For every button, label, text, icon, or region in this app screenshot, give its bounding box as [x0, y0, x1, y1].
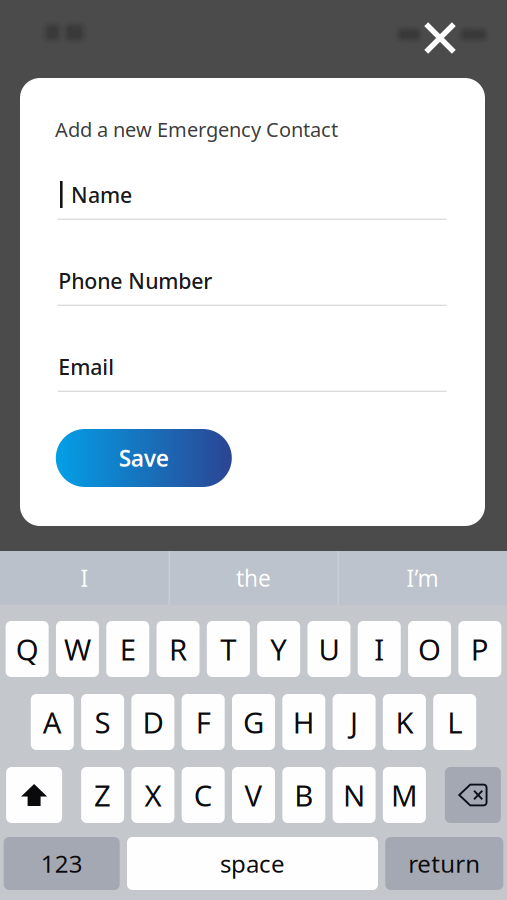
- staticText: N: [343, 775, 365, 814]
- staticText: E: [120, 629, 136, 668]
- staticText: A: [43, 702, 62, 741]
- button[interactable]: V: [232, 767, 275, 823]
- staticText: W: [64, 629, 91, 668]
- staticText: K: [395, 702, 413, 741]
- staticText: F: [196, 702, 211, 741]
- button[interactable]: S: [81, 694, 124, 750]
- staticText: O: [418, 629, 441, 668]
- button[interactable]: P: [458, 621, 501, 677]
- button[interactable]: X: [131, 767, 174, 823]
- button[interactable]: K: [383, 694, 426, 750]
- staticText: T: [220, 629, 236, 668]
- staticText: I’m: [406, 563, 438, 593]
- button[interactable]: Email: [58, 348, 447, 392]
- staticText: U: [318, 629, 339, 668]
- button[interactable]: T: [207, 621, 250, 677]
- staticText: R: [169, 629, 187, 668]
- button[interactable]: Y: [257, 621, 300, 677]
- button[interactable]: W: [56, 621, 99, 677]
- button[interactable]: B: [282, 767, 325, 823]
- button[interactable]: M: [383, 767, 426, 823]
- button[interactable]: E: [106, 621, 149, 677]
- staticText: V: [244, 775, 262, 814]
- button[interactable]: Close: [411, 9, 469, 67]
- button[interactable]: the: [169, 551, 338, 605]
- staticText: I: [80, 563, 88, 593]
- button[interactable]: D: [131, 694, 174, 750]
- staticText: H: [293, 702, 315, 741]
- button[interactable]: Save: [56, 429, 232, 487]
- staticText: S: [95, 702, 111, 741]
- button[interactable]: space: [127, 837, 378, 890]
- staticText: space: [220, 848, 285, 879]
- staticText: Z: [94, 775, 111, 814]
- staticText: Email: [58, 353, 114, 381]
- button[interactable]: I: [358, 621, 401, 677]
- staticText: M: [391, 775, 418, 814]
- staticText: L: [447, 702, 462, 741]
- staticText: Name: [71, 181, 132, 209]
- button[interactable]: F: [182, 694, 225, 750]
- button[interactable]: Name: [58, 176, 447, 220]
- button[interactable]: G: [232, 694, 275, 750]
- staticText: the: [236, 563, 271, 593]
- button[interactable]: I: [0, 551, 169, 605]
- button[interactable]: Phone Number: [58, 262, 447, 306]
- staticText: Phone Number: [58, 267, 212, 295]
- button[interactable]: Q: [6, 621, 49, 677]
- staticText: I: [374, 629, 384, 668]
- button[interactable]: Delete: [445, 767, 501, 823]
- button[interactable]: U: [307, 621, 350, 677]
- button[interactable]: return: [385, 837, 503, 890]
- button[interactable]: R: [156, 621, 199, 677]
- button[interactable]: H: [282, 694, 325, 750]
- staticText: Q: [16, 629, 39, 668]
- staticText: Add a new Emergency Contact: [55, 116, 338, 143]
- button[interactable]: Shift: [6, 767, 62, 823]
- staticText: C: [194, 775, 213, 814]
- button[interactable]: A: [31, 694, 74, 750]
- staticText: J: [350, 702, 358, 741]
- button[interactable]: C: [182, 767, 225, 823]
- staticText: G: [243, 702, 264, 741]
- staticText: P: [471, 629, 489, 668]
- button[interactable]: I’m: [338, 551, 507, 605]
- button[interactable]: J: [333, 694, 376, 750]
- staticText: Y: [270, 629, 287, 668]
- staticText: D: [142, 702, 163, 741]
- button[interactable]: 123: [4, 837, 120, 890]
- button[interactable]: Z: [81, 767, 124, 823]
- button[interactable]: N: [333, 767, 376, 823]
- staticText: X: [144, 775, 161, 814]
- staticText: Save: [119, 443, 169, 473]
- staticText: B: [294, 775, 313, 814]
- button[interactable]: L: [433, 694, 476, 750]
- staticText: 123: [41, 848, 83, 879]
- button[interactable]: O: [408, 621, 451, 677]
- staticText: return: [408, 848, 480, 879]
